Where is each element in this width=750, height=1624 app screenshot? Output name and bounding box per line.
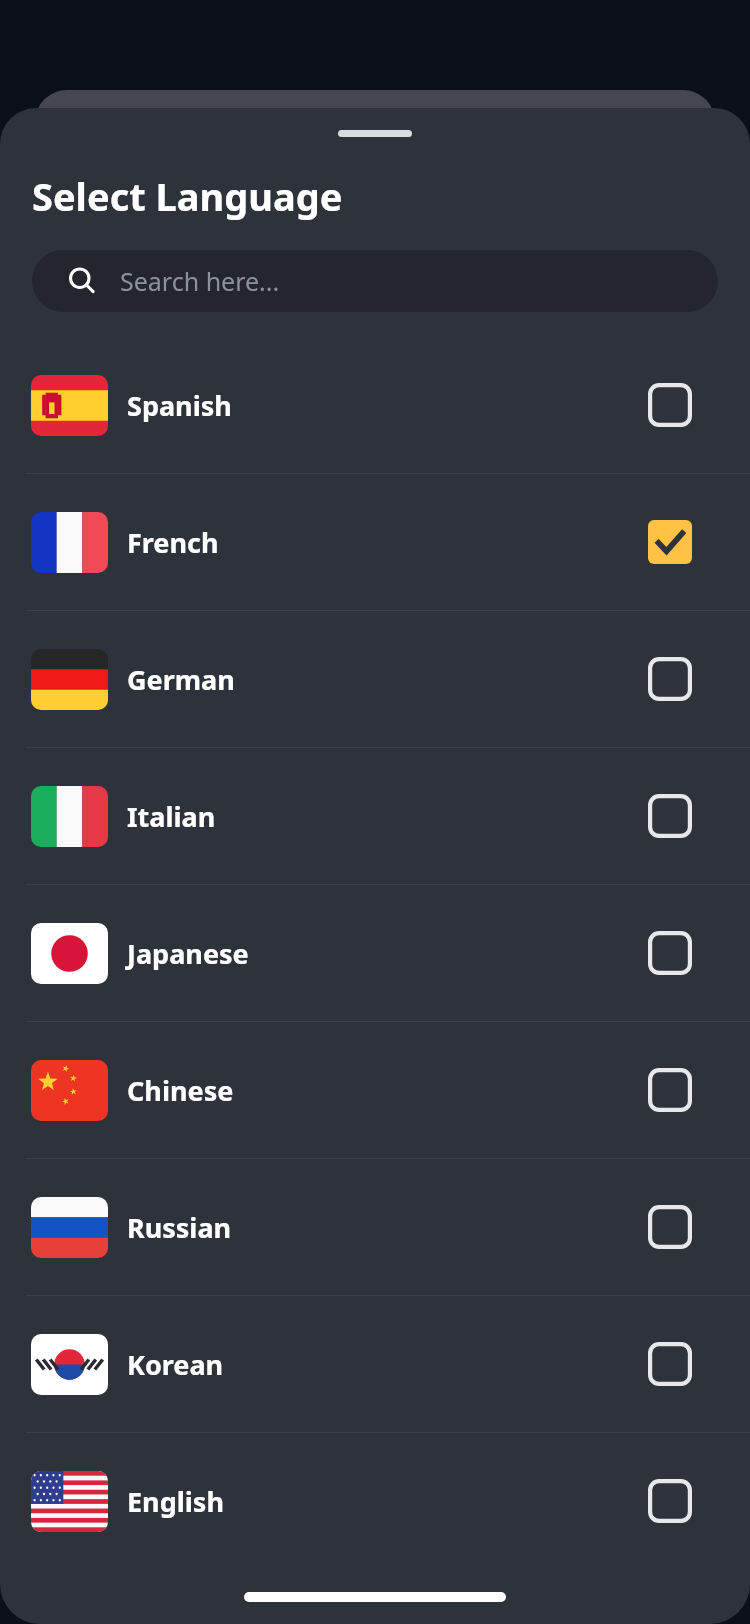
button[interactable]: Select Russian	[648, 1205, 692, 1249]
button[interactable]: Select Japanese	[648, 931, 692, 975]
staticText: English	[127, 1483, 224, 1520]
button[interactable]: Korean	[0, 1296, 750, 1432]
button[interactable]: Japanese	[0, 885, 750, 1021]
button[interactable]: Search here...	[32, 250, 718, 312]
staticText: Russian	[127, 1209, 232, 1246]
staticText: Korean	[127, 1346, 224, 1383]
button[interactable]: Russian	[0, 1159, 750, 1295]
button[interactable]: Select Chinese	[648, 1068, 692, 1112]
staticText: Search here...	[120, 264, 280, 298]
staticText: Spanish	[127, 387, 232, 424]
button[interactable]: Spanish	[0, 337, 750, 473]
staticText: Select Language	[32, 170, 343, 222]
button[interactable]: Select French	[648, 520, 692, 564]
button[interactable]: Italian	[0, 748, 750, 884]
button[interactable]: German	[0, 611, 750, 747]
staticText: German	[127, 661, 235, 698]
staticText: French	[127, 524, 219, 561]
staticText: Japanese	[127, 935, 249, 972]
button[interactable]: Select Italian	[648, 794, 692, 838]
button[interactable]: Select Spanish	[648, 383, 692, 427]
button[interactable]: Select Korean	[648, 1342, 692, 1386]
button[interactable]: Chinese	[0, 1022, 750, 1158]
button[interactable]: English	[0, 1433, 750, 1569]
button[interactable]: French	[0, 474, 750, 610]
staticText: Chinese	[127, 1072, 234, 1109]
staticText: Italian	[127, 798, 216, 835]
button[interactable]: Select English	[648, 1479, 692, 1523]
button[interactable]: Select German	[648, 657, 692, 701]
